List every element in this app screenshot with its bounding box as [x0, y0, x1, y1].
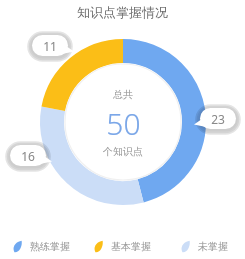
button[interactable]: 11: [32, 35, 68, 56]
staticText: 熟练掌握: [30, 240, 70, 253]
staticText: 未掌握: [198, 240, 228, 253]
other: 基本掌握: [93, 240, 104, 253]
staticText: 16: [21, 148, 35, 164]
button[interactable]: 11: [0, 0, 245, 259]
button[interactable]: 16: [10, 145, 46, 166]
staticText: 知识点掌握情况: [77, 4, 168, 20]
staticText: 总共: [113, 88, 133, 101]
button[interactable]: 基本掌握: [81, 240, 163, 253]
button[interactable]: 23: [200, 108, 236, 129]
staticText: 11: [43, 38, 57, 54]
button[interactable]: 熟练掌握: [0, 240, 81, 253]
button[interactable]: 未掌握: [163, 240, 245, 253]
staticText: 23: [211, 111, 225, 127]
other: 未掌握: [180, 240, 191, 253]
staticText: 个知识点: [103, 145, 143, 158]
staticText: 基本掌握: [111, 240, 151, 253]
staticText: 50: [106, 103, 141, 144]
other: 熟练掌握: [12, 240, 23, 253]
